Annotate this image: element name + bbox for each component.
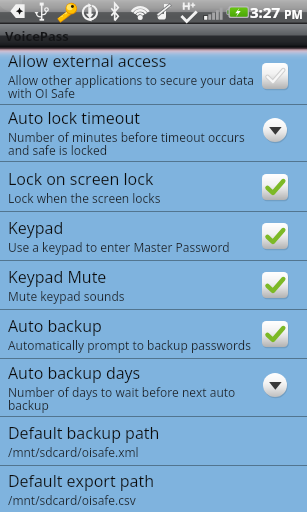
staticText: Number of minutes before timeout occurs … xyxy=(8,129,258,159)
staticText: Keypad xyxy=(8,217,64,239)
staticText: Keypad Mute xyxy=(8,266,107,288)
button[interactable]: Unchecked xyxy=(262,63,288,89)
button[interactable]: Auto backup days xyxy=(0,359,307,416)
button[interactable]: Allow external access xyxy=(0,47,307,104)
button[interactable]: Auto lock timeout xyxy=(0,105,307,161)
button[interactable]: Default export path xyxy=(0,466,307,512)
staticText: Lock when the screen locks xyxy=(8,190,161,206)
staticText: Number of days to wait before next auto … xyxy=(8,384,258,414)
button[interactable]: Lock on screen lock xyxy=(0,162,307,211)
staticText: Allow other applications to secure your … xyxy=(8,72,257,102)
staticText: Automatically prompt to backup passwords xyxy=(8,337,251,353)
staticText: PM xyxy=(284,6,303,22)
staticText: Default export path xyxy=(8,470,154,492)
button[interactable]: Checked xyxy=(262,174,288,200)
staticText: Auto backup days xyxy=(8,362,141,384)
button[interactable]: Checked xyxy=(262,223,288,249)
staticText: 3:27 xyxy=(250,2,281,22)
button[interactable]: Checked xyxy=(262,321,288,347)
staticText: Auto lock timeout xyxy=(8,107,140,129)
button[interactable]: Checked xyxy=(262,272,288,298)
staticText: Use a keypad to enter Master Password xyxy=(8,239,230,255)
staticText: /mnt/sdcard/oisafe.xml xyxy=(8,444,139,460)
button[interactable]: Open list xyxy=(263,118,287,142)
staticText: Auto backup xyxy=(8,315,102,337)
button[interactable]: Keypad xyxy=(0,212,307,260)
button[interactable]: Default backup path xyxy=(0,417,307,465)
staticText: Mute keypad sounds xyxy=(8,288,125,304)
staticText: /mnt/sdcard/oisafe.csv xyxy=(8,492,136,508)
staticText: Default backup path xyxy=(8,422,160,444)
button[interactable]: Open list xyxy=(263,373,287,397)
staticText: Allow external access xyxy=(8,50,167,72)
staticText: VoicePass xyxy=(5,27,69,45)
button[interactable]: Auto backup xyxy=(0,310,307,358)
staticText: Lock on screen lock xyxy=(8,168,154,190)
button[interactable]: Keypad Mute xyxy=(0,261,307,309)
